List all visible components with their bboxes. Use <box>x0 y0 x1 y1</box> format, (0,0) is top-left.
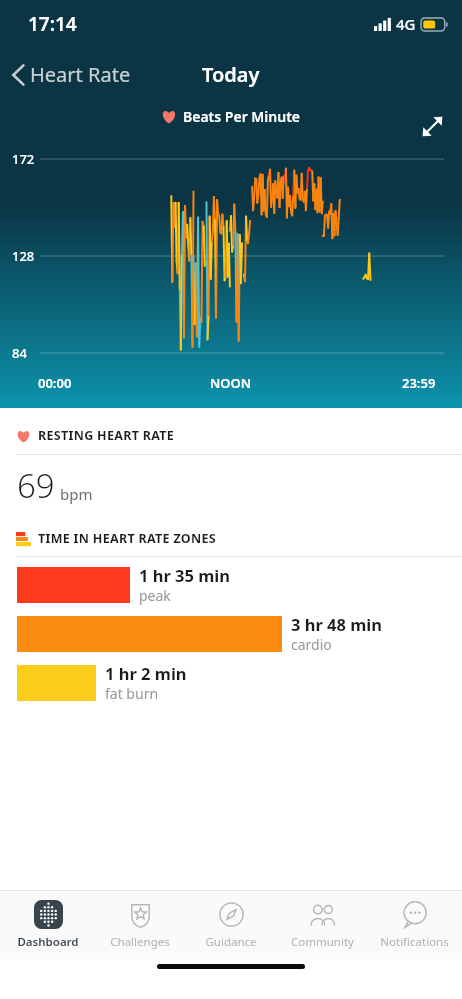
button[interactable]: Notifications <box>371 896 457 954</box>
button[interactable]: RESTING HEART RATE <box>16 427 175 444</box>
button[interactable]: Dashboard <box>5 896 91 954</box>
staticText: bpm <box>60 484 93 504</box>
staticText: Beats Per Minute <box>183 107 301 126</box>
staticText: Community <box>291 934 354 950</box>
button[interactable]: 1 hr 2 min <box>0 662 462 703</box>
button[interactable]: Guidance <box>188 896 274 954</box>
staticText: Guidance <box>205 934 257 950</box>
button[interactable]: TIME IN HEART RATE ZONES <box>16 530 216 547</box>
staticText: NOON <box>210 374 252 392</box>
staticText: fat burn <box>105 684 159 703</box>
staticText: 4G <box>396 14 416 34</box>
staticText: Heart Rate <box>30 61 131 88</box>
staticText: 23:59 <box>402 374 436 392</box>
staticText: 172 <box>12 150 35 168</box>
staticText: 17:14 <box>28 11 77 37</box>
staticText: Dashboard <box>17 934 79 950</box>
staticText: 128 <box>12 247 35 265</box>
staticText: Notifications <box>380 934 449 950</box>
staticText: Today <box>202 61 260 88</box>
button[interactable]: 3 hr 48 min <box>0 613 462 654</box>
button[interactable]: 1 hr 35 min <box>0 564 462 605</box>
staticText: RESTING HEART RATE <box>38 427 175 444</box>
button[interactable]: Community <box>279 896 365 954</box>
button[interactable]: Heart Rate <box>0 55 141 94</box>
staticText: 00:00 <box>38 374 72 392</box>
staticText: 3 hr 48 min <box>291 613 383 635</box>
staticText: 84 <box>12 344 27 362</box>
staticText: TIME IN HEART RATE ZONES <box>38 530 216 547</box>
staticText: 69 <box>17 463 55 508</box>
button[interactable]: Challenges <box>97 896 183 954</box>
staticText: cardio <box>291 635 332 654</box>
staticText: 1 hr 35 min <box>139 564 231 586</box>
staticText: Challenges <box>110 934 170 950</box>
button[interactable]: Expand chart <box>412 106 452 146</box>
staticText: peak <box>139 586 171 605</box>
staticText: 1 hr 2 min <box>105 662 187 684</box>
